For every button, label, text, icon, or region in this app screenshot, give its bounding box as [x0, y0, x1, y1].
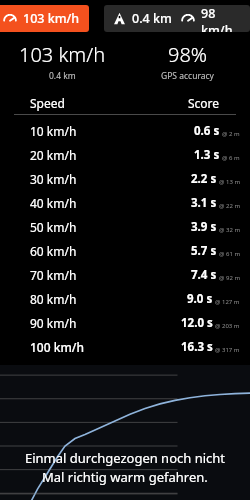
staticText: 10 km/h: [30, 123, 77, 139]
staticText: 3.1 s: [191, 195, 217, 211]
staticText: @ 6 m: [222, 154, 240, 162]
button[interactable]: 98%: [125, 41, 250, 82]
staticText: Score: [188, 95, 220, 111]
button[interactable]: 40 km/h: [0, 191, 250, 215]
staticText: 50 km/h: [30, 219, 77, 235]
staticText: 0.6 s: [194, 123, 220, 139]
staticText: 16.3 s: [181, 339, 213, 355]
button[interactable]: 60 km/h: [0, 239, 250, 263]
staticText: 103 km/h: [19, 41, 106, 68]
staticText: @ 92 m: [219, 274, 240, 282]
staticText: 12.0 s: [181, 315, 213, 331]
staticText: 0.4 km: [49, 70, 76, 82]
staticText: @ 61 m: [219, 250, 240, 258]
staticText: Mal richtig warm gefahren.: [42, 468, 208, 486]
staticText: @ 13 m: [219, 178, 240, 186]
staticText: @ 2 m: [222, 130, 240, 138]
staticText: 5.7 s: [191, 243, 217, 259]
staticText: 90 km/h: [30, 315, 77, 331]
staticText: 98 km/h: [201, 5, 241, 32]
button[interactable]: Distance: [104, 5, 250, 32]
staticText: 103 km/h: [23, 10, 80, 27]
other: Speed: [181, 12, 195, 26]
staticText: 3.9 s: [191, 219, 217, 235]
button[interactable]: 103 km/h: [0, 41, 125, 82]
button[interactable]: 30 km/h: [0, 167, 250, 191]
staticText: @ 203 m: [215, 322, 240, 330]
staticText: @ 127 m: [215, 298, 240, 306]
button[interactable]: 20 km/h: [0, 143, 250, 167]
button[interactable]: 90 km/h: [0, 311, 250, 335]
staticText: 98%: [168, 41, 208, 68]
button[interactable]: 10 km/h: [0, 119, 250, 143]
staticText: 1.3 s: [194, 147, 220, 163]
staticText: Einmal durchgezogen noch nicht: [25, 449, 226, 467]
button[interactable]: 100 km/h: [0, 335, 250, 359]
staticText: 70 km/h: [30, 267, 77, 283]
other: Distance: [113, 12, 126, 25]
staticText: 0.4 km: [132, 10, 172, 27]
staticText: 9.0 s: [187, 291, 213, 307]
button[interactable]: Speed: [0, 5, 89, 32]
staticText: Speed: [30, 95, 65, 111]
staticText: 100 km/h: [30, 339, 84, 355]
staticText: GPS accuracy: [161, 70, 214, 82]
staticText: 20 km/h: [30, 147, 77, 163]
staticText: @ 22 m: [219, 202, 240, 210]
staticText: 40 km/h: [30, 195, 77, 211]
staticText: @ 317 m: [215, 346, 240, 354]
staticText: 60 km/h: [30, 243, 77, 259]
staticText: 80 km/h: [30, 291, 77, 307]
button[interactable]: 70 km/h: [0, 263, 250, 287]
button[interactable]: 50 km/h: [0, 215, 250, 239]
button[interactable]: 80 km/h: [0, 287, 250, 311]
staticText: 30 km/h: [30, 171, 77, 187]
staticText: 2.2 s: [191, 171, 217, 187]
staticText: @ 32 m: [219, 226, 240, 234]
other: Speed: [3, 12, 17, 26]
staticText: 7.4 s: [191, 267, 217, 283]
